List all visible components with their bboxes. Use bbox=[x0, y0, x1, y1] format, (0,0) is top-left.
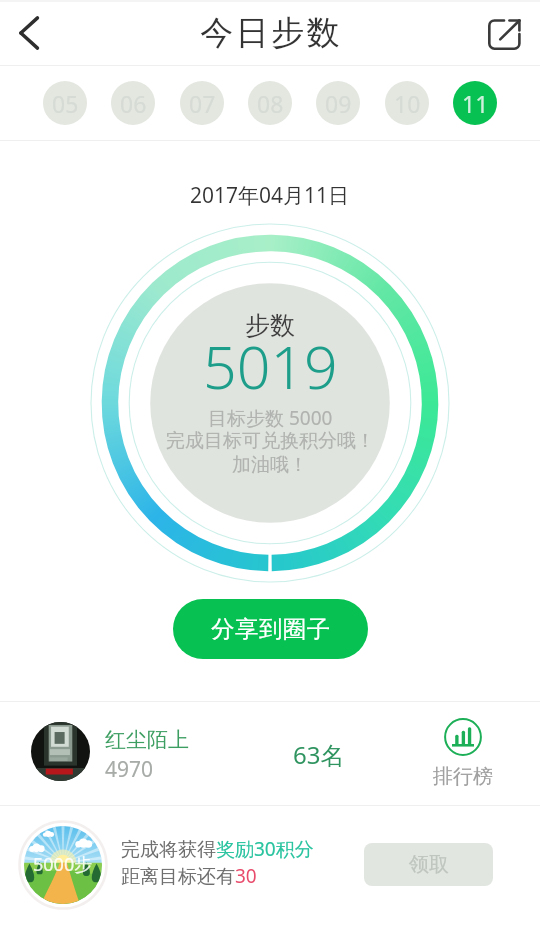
staticText: 完成将获得奖励30积分 bbox=[121, 836, 314, 862]
button[interactable]: 09 bbox=[316, 81, 360, 125]
staticText: 09 bbox=[325, 88, 352, 119]
staticText: 5000步 bbox=[33, 852, 93, 877]
button[interactable]: 07 bbox=[180, 81, 224, 125]
staticText: 05 bbox=[52, 88, 79, 119]
button[interactable]: 分享到圈子 bbox=[173, 599, 368, 659]
staticText: 距离目标还有30 bbox=[121, 863, 257, 889]
staticText: 步数 bbox=[245, 310, 295, 341]
button[interactable]: 08 bbox=[248, 81, 292, 125]
button[interactable]: 05 bbox=[43, 81, 87, 125]
staticText: 红尘陌上 bbox=[105, 727, 189, 753]
button[interactable]: 06 bbox=[111, 81, 155, 125]
staticText: 分享到圈子 bbox=[211, 614, 331, 644]
button[interactable]: 排行榜 bbox=[428, 702, 498, 805]
staticText: 11 bbox=[462, 88, 489, 119]
staticText: 今日步数 bbox=[199, 12, 341, 54]
button[interactable]: 领取 bbox=[364, 843, 493, 886]
staticText: 4970 bbox=[105, 755, 154, 784]
staticText: 10 bbox=[394, 88, 421, 119]
staticText: 06 bbox=[120, 88, 147, 119]
staticText: 63名 bbox=[293, 738, 345, 771]
staticText: 08 bbox=[257, 88, 284, 119]
button[interactable]: 11 bbox=[453, 81, 497, 125]
staticText: 加油哦！ bbox=[232, 453, 308, 477]
button[interactable]: Back bbox=[0, 0, 58, 65]
staticText: 完成目标可兑换积分哦！ bbox=[166, 429, 375, 453]
staticText: 2017年04月11日 bbox=[190, 181, 350, 210]
staticText: 5019 bbox=[203, 326, 338, 406]
button[interactable]: 10 bbox=[385, 81, 429, 125]
button[interactable]: 红尘陌上 bbox=[0, 702, 540, 805]
staticText: 目标步数 5000 bbox=[208, 405, 333, 431]
staticText: 07 bbox=[189, 88, 216, 119]
button[interactable]: Share bbox=[470, 0, 540, 65]
staticText: 领取 bbox=[409, 852, 449, 877]
staticText: 排行榜 bbox=[433, 764, 493, 789]
